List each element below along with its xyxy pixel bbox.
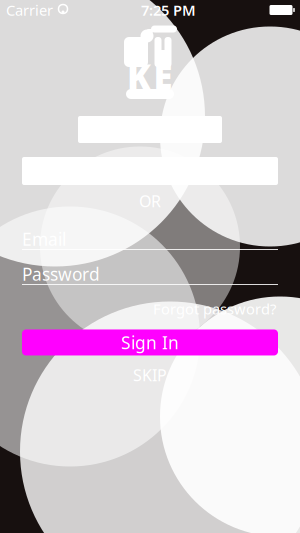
staticText: Sign In bbox=[121, 331, 179, 354]
staticText: K bbox=[127, 53, 151, 99]
staticText: Forgot password? bbox=[153, 299, 276, 318]
staticText: Email bbox=[22, 227, 66, 250]
button[interactable]: Forgot password? bbox=[151, 296, 278, 321]
staticText: Carrier bbox=[6, 0, 53, 20]
button[interactable]: SKIP bbox=[121, 360, 179, 390]
staticText: Password bbox=[22, 262, 100, 285]
staticText: me bbox=[142, 88, 157, 100]
staticText: 7:25 PM bbox=[141, 0, 196, 20]
staticText: SKIP bbox=[133, 364, 167, 386]
staticText: OR bbox=[139, 190, 161, 212]
button[interactable]: Sign In bbox=[22, 329, 278, 355]
staticText: E bbox=[153, 53, 172, 99]
